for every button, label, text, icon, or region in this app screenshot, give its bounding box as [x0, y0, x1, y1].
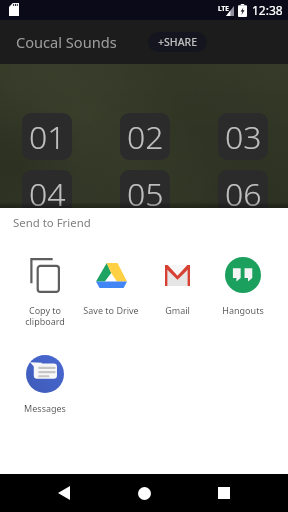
- button[interactable]: Back: [44, 474, 84, 512]
- staticText: 03: [225, 115, 262, 159]
- button[interactable]: 05: [120, 170, 170, 217]
- staticText: 04: [29, 172, 66, 216]
- button[interactable]: Home: [124, 474, 164, 512]
- staticText: 06: [225, 172, 262, 216]
- button[interactable]: +SHARE: [148, 32, 207, 52]
- button[interactable]: Messages: [12, 355, 78, 414]
- button[interactable]: 02: [120, 113, 170, 160]
- button[interactable]: 06: [218, 170, 268, 217]
- staticText: Copy to clipboard: [25, 304, 65, 327]
- button[interactable]: Hangouts: [210, 257, 276, 316]
- staticText: LTE: [218, 4, 229, 13]
- staticText: 01: [29, 115, 66, 159]
- staticText: Hangouts: [222, 304, 264, 316]
- button[interactable]: 04: [22, 170, 72, 217]
- button[interactable]: Copy to clipboard: [12, 257, 78, 327]
- button[interactable]: Gmail: [144, 257, 210, 316]
- staticText: Messages: [24, 402, 66, 414]
- button[interactable]: 01: [22, 113, 72, 160]
- button[interactable]: 03: [218, 113, 268, 160]
- staticText: 05: [127, 172, 164, 216]
- staticText: Send to Friend: [13, 215, 91, 231]
- staticText: Gmail: [165, 304, 190, 316]
- staticText: 12:38: [252, 2, 283, 18]
- staticText: Coucal Sounds: [16, 32, 117, 52]
- staticText: Save to Drive: [83, 304, 139, 316]
- button[interactable]: Save to Drive: [78, 257, 144, 316]
- button[interactable]: Recent apps: [204, 474, 244, 512]
- staticText: 02: [127, 115, 164, 159]
- staticText: +SHARE: [158, 35, 197, 49]
